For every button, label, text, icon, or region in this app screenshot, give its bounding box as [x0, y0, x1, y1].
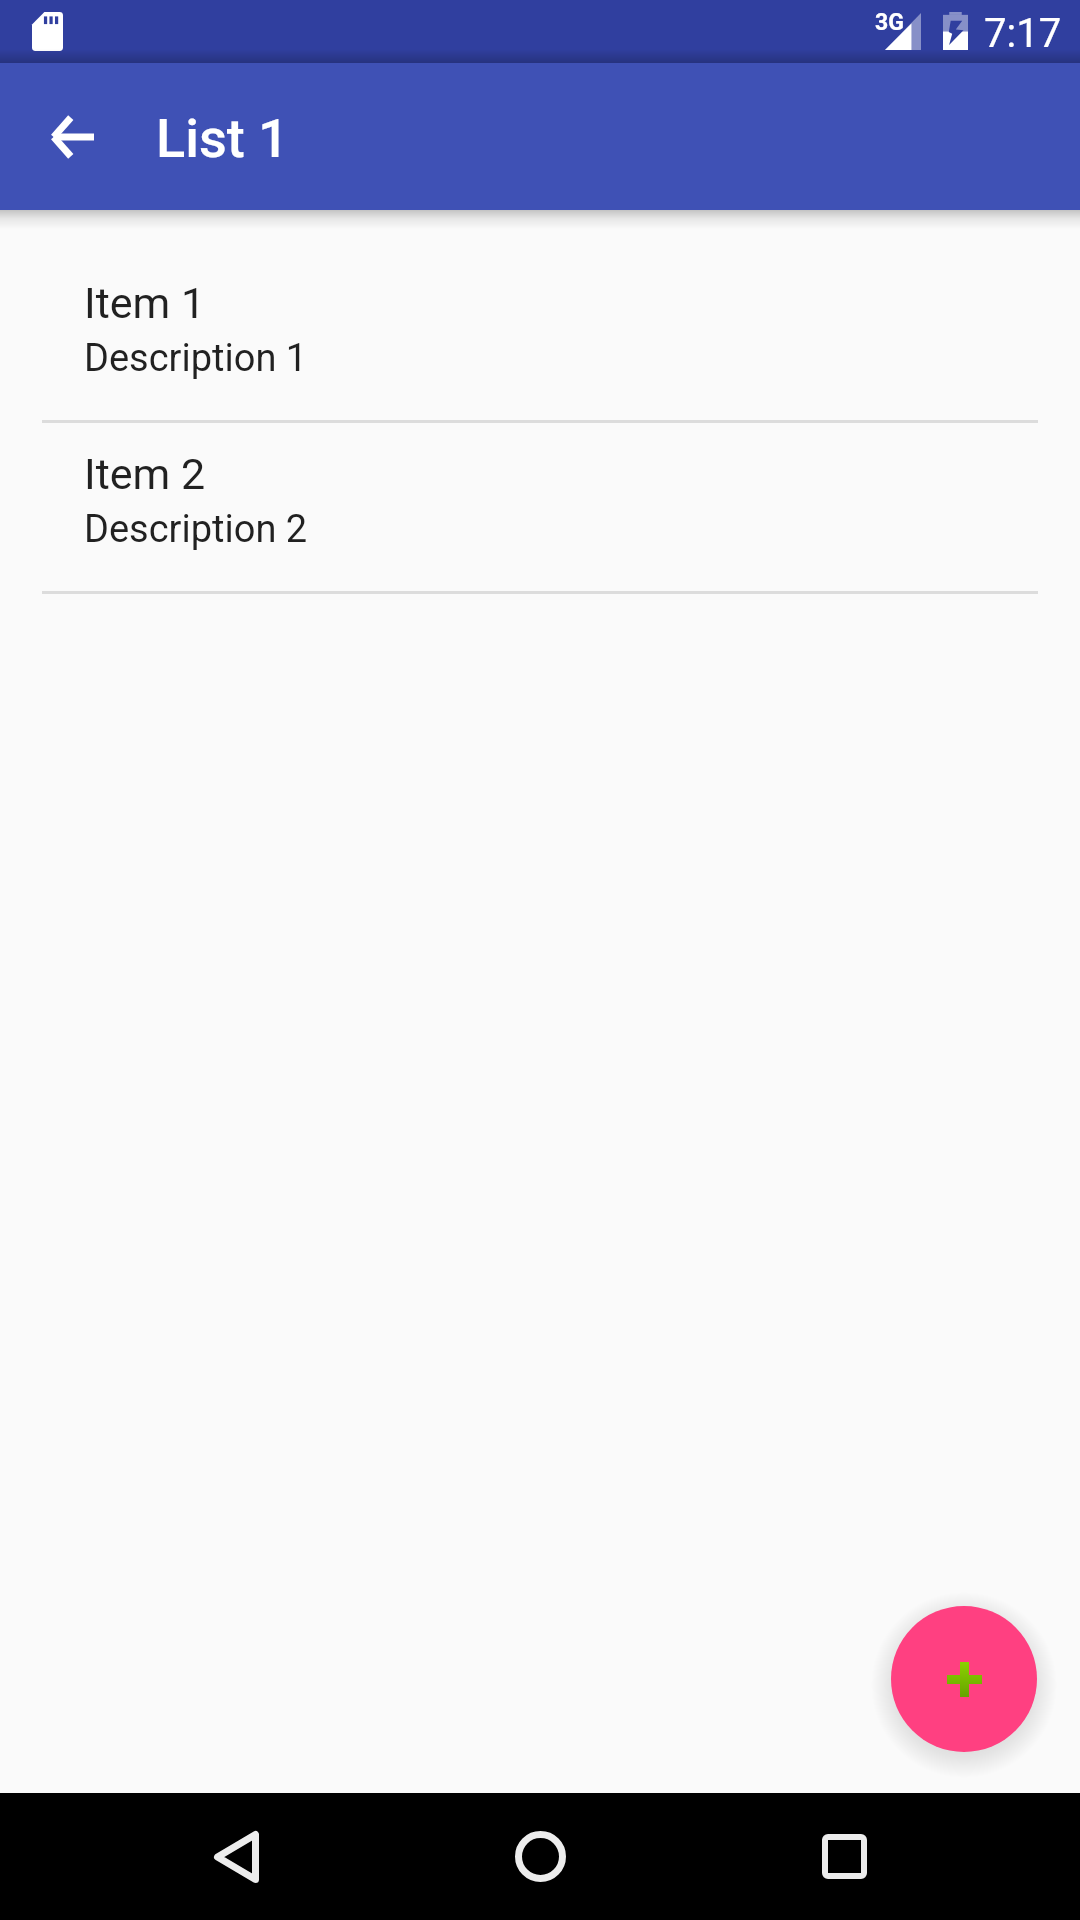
staticText: Item 2 [84, 449, 206, 499]
button[interactable]: Item 1 [0, 252, 1080, 423]
staticText: 7:17 [984, 10, 1062, 57]
button[interactable]: Recent apps [754, 1793, 934, 1920]
staticText: Item 1 [84, 278, 206, 328]
button[interactable]: Add item [891, 1606, 1037, 1752]
staticText: List 1 [156, 107, 289, 170]
button[interactable]: Navigate up [28, 93, 116, 181]
button[interactable]: Item 2 [0, 423, 1080, 594]
staticText: Description 1 [84, 336, 308, 381]
staticText: 3G [875, 9, 904, 36]
button[interactable]: Back [146, 1793, 326, 1920]
staticText: Description 2 [84, 507, 308, 552]
button[interactable]: Home [450, 1793, 630, 1920]
